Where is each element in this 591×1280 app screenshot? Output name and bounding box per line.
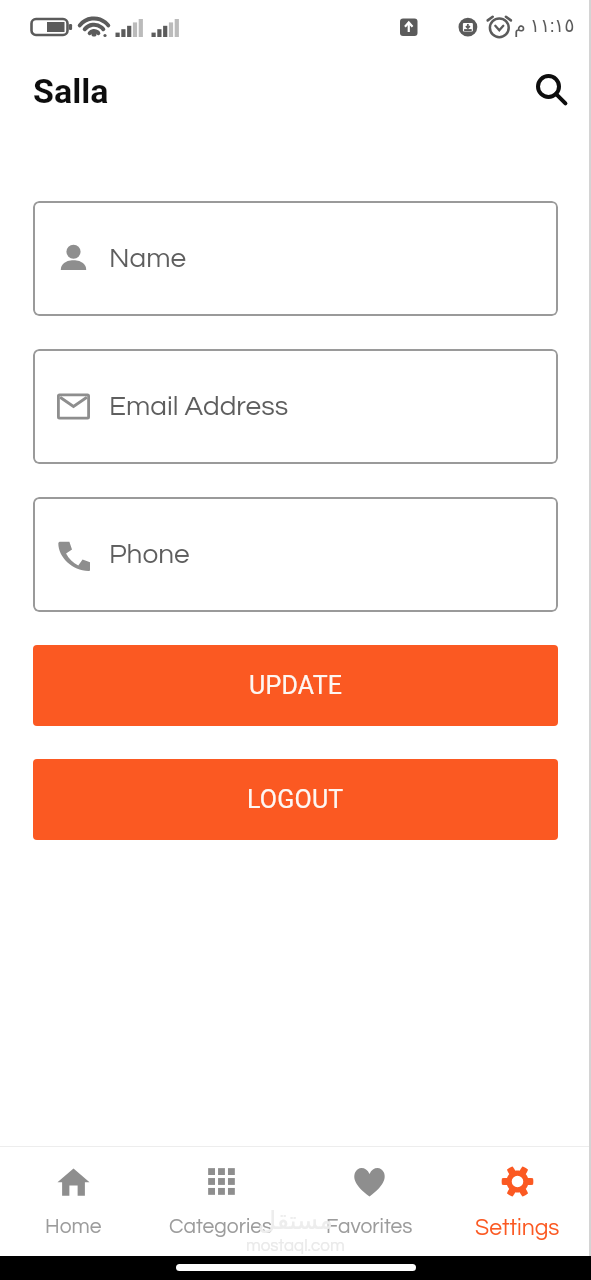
staticText: Home (45, 1216, 102, 1238)
staticText: ١١:١٥ م (514, 14, 575, 36)
staticText: LOGOUT (247, 785, 344, 814)
staticText: Name (109, 244, 187, 273)
button[interactable]: UPDATE (33, 645, 558, 726)
button[interactable]: Email Address (33, 349, 558, 464)
staticText: Phone (109, 540, 190, 569)
button[interactable]: Name (33, 201, 558, 316)
staticText: mostaql.com (246, 1237, 345, 1255)
staticText: Favorites (326, 1216, 413, 1238)
staticText: Categories (169, 1216, 273, 1238)
staticText: مستقل (258, 1206, 333, 1235)
staticText: Settings (475, 1216, 560, 1240)
button[interactable]: Settings (443, 1147, 591, 1256)
staticText: UPDATE (249, 671, 343, 700)
button[interactable]: Home (0, 1147, 147, 1256)
staticText: Email Address (109, 392, 289, 421)
button[interactable]: Phone (33, 497, 558, 612)
button[interactable]: Favorites (295, 1147, 443, 1256)
button[interactable]: LOGOUT (33, 759, 558, 840)
button[interactable]: Search (526, 66, 576, 116)
button[interactable]: Categories (147, 1147, 295, 1256)
staticText: Salla (33, 71, 109, 111)
